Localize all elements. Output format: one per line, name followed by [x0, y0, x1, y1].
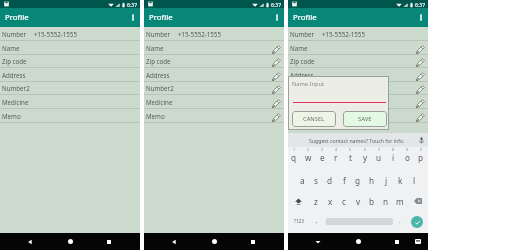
button[interactable]: Medicine	[0, 95, 140, 109]
button[interactable]: Address	[288, 68, 428, 82]
button[interactable]: Back	[21, 233, 39, 250]
other: Edit	[271, 45, 281, 55]
button[interactable]: Number	[0, 27, 140, 41]
staticText: g	[355, 175, 361, 186]
button[interactable]: Shift	[291, 190, 305, 212]
button[interactable]: 7	[372, 144, 386, 166]
button[interactable]: Back	[165, 233, 183, 250]
button[interactable]: n	[379, 190, 393, 212]
button[interactable]: s	[309, 169, 323, 191]
button[interactable]: Backspace	[411, 190, 425, 212]
button[interactable]: 1	[287, 144, 301, 166]
staticText: Number2	[2, 84, 30, 92]
button[interactable]: Recents	[100, 233, 118, 250]
staticText: 4	[335, 147, 338, 152]
staticText: Name	[290, 44, 308, 52]
button[interactable]: k	[393, 169, 407, 191]
button[interactable]: Medicine	[144, 95, 284, 109]
staticText: r	[334, 152, 338, 163]
button[interactable]: a	[295, 169, 309, 191]
button[interactable]: Home	[61, 233, 79, 250]
button[interactable]: Name	[144, 41, 284, 55]
button[interactable]: Recents	[244, 233, 262, 250]
other: Edit	[415, 45, 425, 55]
button[interactable]: More options	[414, 8, 428, 27]
staticText: k	[398, 175, 403, 186]
staticText: Suggest contact names? Touch for info.	[309, 137, 405, 144]
button[interactable]: Zip code	[0, 54, 140, 68]
button[interactable]: d	[323, 169, 337, 191]
staticText: 8	[392, 147, 395, 152]
staticText: u	[376, 152, 382, 163]
button[interactable]: Address	[0, 68, 140, 82]
staticText: Number	[146, 30, 171, 38]
button[interactable]: Number2	[288, 81, 428, 95]
staticText: h	[369, 175, 375, 186]
button[interactable]: Back	[309, 233, 327, 250]
button[interactable]: m	[393, 190, 407, 212]
staticText: n	[383, 196, 389, 207]
button[interactable]: l	[407, 169, 421, 191]
button[interactable]: Number	[144, 27, 284, 41]
staticText: Zip code	[2, 57, 27, 65]
button[interactable]: f	[337, 169, 351, 191]
button[interactable]: z	[309, 190, 323, 212]
staticText: z	[314, 196, 318, 207]
button[interactable]: 3	[315, 144, 329, 166]
button[interactable]: g	[351, 169, 365, 191]
button[interactable]: Name	[0, 41, 140, 55]
button[interactable]: Memo	[288, 109, 428, 123]
staticText: Zip code	[146, 57, 171, 65]
button[interactable]: Home	[205, 233, 223, 250]
button[interactable]: Medicine	[288, 95, 428, 109]
staticText: e	[320, 152, 325, 163]
button[interactable]: v	[351, 190, 365, 212]
other: Edit	[271, 85, 281, 95]
button[interactable]: 8	[386, 144, 400, 166]
button[interactable]: Recents	[388, 233, 406, 250]
button[interactable]: x	[323, 190, 337, 212]
staticText: q	[291, 152, 297, 163]
button[interactable]: h	[365, 169, 379, 191]
staticText: o	[405, 152, 410, 163]
other: Edit	[415, 58, 425, 68]
button[interactable]: Hide keyboard	[409, 233, 427, 250]
button[interactable]: Memo	[144, 109, 284, 123]
staticText: 6	[364, 147, 367, 152]
staticText: Medicine	[146, 98, 173, 106]
button[interactable]: j	[379, 169, 393, 191]
staticText: Profile	[5, 12, 29, 23]
button[interactable]: More options	[270, 8, 284, 27]
button[interactable]: Zip code	[144, 54, 284, 68]
button[interactable]: Number2	[144, 81, 284, 95]
staticText: +15-5552-1555	[322, 30, 365, 38]
staticText: p	[418, 152, 424, 163]
button[interactable]: Home	[349, 233, 367, 250]
button[interactable]: SAVE	[343, 111, 387, 127]
staticText: Name	[2, 44, 20, 52]
button[interactable]: 4	[329, 144, 343, 166]
staticText: 7	[378, 147, 381, 152]
button[interactable]: 9	[400, 144, 414, 166]
button[interactable]: Zip code	[288, 54, 428, 68]
staticText: ?123	[294, 218, 304, 224]
button[interactable]: Enter	[411, 216, 423, 228]
button[interactable]: Name	[288, 41, 428, 55]
button[interactable]: Number	[288, 27, 428, 41]
button[interactable]: 5	[343, 144, 357, 166]
button[interactable]: 6	[358, 144, 372, 166]
staticText: Address	[290, 71, 314, 79]
staticText: 0	[420, 147, 423, 152]
button[interactable]: c	[337, 190, 351, 212]
button[interactable]: b	[365, 190, 379, 212]
staticText: Zip code	[290, 57, 315, 65]
button[interactable]: CANSEL	[292, 111, 336, 127]
staticText: CANSEL	[303, 115, 325, 123]
button[interactable]: 0	[414, 144, 428, 166]
button[interactable]: Address	[144, 68, 284, 82]
button[interactable]: More options	[126, 8, 140, 27]
button[interactable]: Number2	[0, 81, 140, 95]
button[interactable]: 2	[301, 144, 315, 166]
button[interactable]: Memo	[0, 109, 140, 123]
